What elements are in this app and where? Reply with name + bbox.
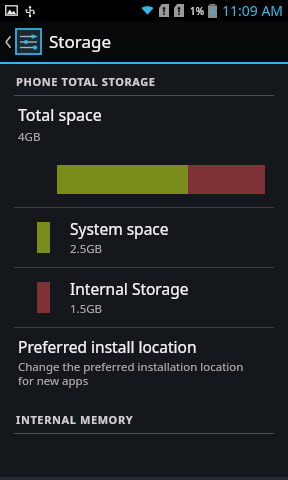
staticText: Total space [18,104,102,126]
staticText: 1.5GB [70,301,103,317]
staticText: 4GB [18,129,41,145]
staticText: Storage [49,30,112,53]
staticText: INTERNAL MEMORY [16,412,134,427]
staticText: System space [70,218,169,239]
button[interactable]: Preferred install location [0,328,288,396]
button[interactable]: Navigate up, Storage [0,21,288,62]
staticText: PHONE TOTAL STORAGE [16,74,156,89]
button[interactable]: Total space [0,96,288,151]
staticText: 1% [190,4,205,18]
staticText: Preferred install location [18,336,197,357]
staticText: 2.5GB [70,241,103,257]
staticText: 11:09 AM [222,1,284,20]
button[interactable]: Internal Storage [0,268,288,327]
staticText: Change the preferred installation locati… [18,359,244,388]
button[interactable]: System space [0,208,288,267]
staticText: Internal Storage [70,278,189,299]
